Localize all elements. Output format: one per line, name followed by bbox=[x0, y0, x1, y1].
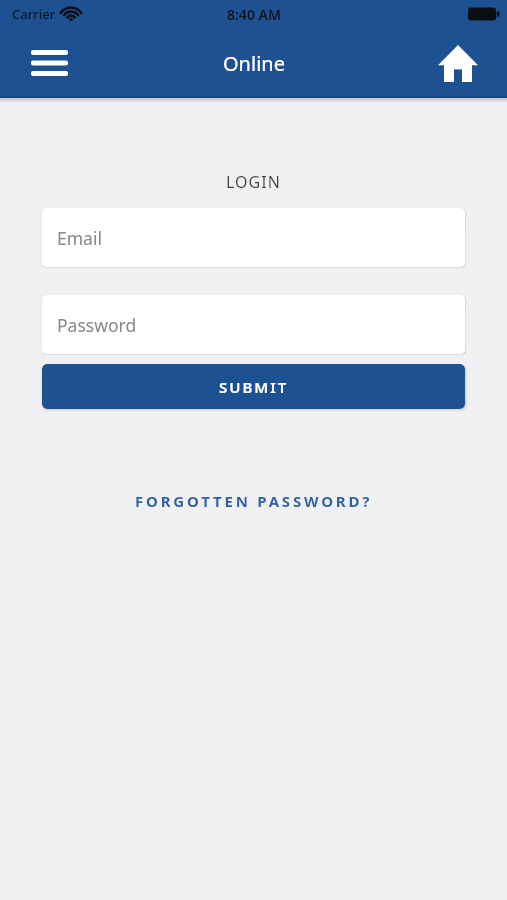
staticText: Email bbox=[57, 226, 102, 250]
staticText: LOGIN bbox=[226, 171, 281, 193]
staticText: 8:40 AM bbox=[227, 5, 281, 24]
button[interactable]: SUBMIT bbox=[42, 364, 465, 409]
button[interactable]: FORGOTTEN PASSWORD? bbox=[135, 491, 373, 511]
staticText: Carrier bbox=[12, 5, 56, 23]
staticText: Online bbox=[223, 50, 285, 77]
button[interactable] bbox=[427, 36, 489, 90]
button[interactable] bbox=[18, 36, 80, 90]
staticText: SUBMIT bbox=[219, 377, 289, 397]
staticText: FORGOTTEN PASSWORD? bbox=[135, 491, 373, 511]
button[interactable]: Email bbox=[42, 208, 465, 267]
staticText: Password bbox=[57, 313, 137, 337]
button[interactable]: Password bbox=[42, 295, 465, 354]
